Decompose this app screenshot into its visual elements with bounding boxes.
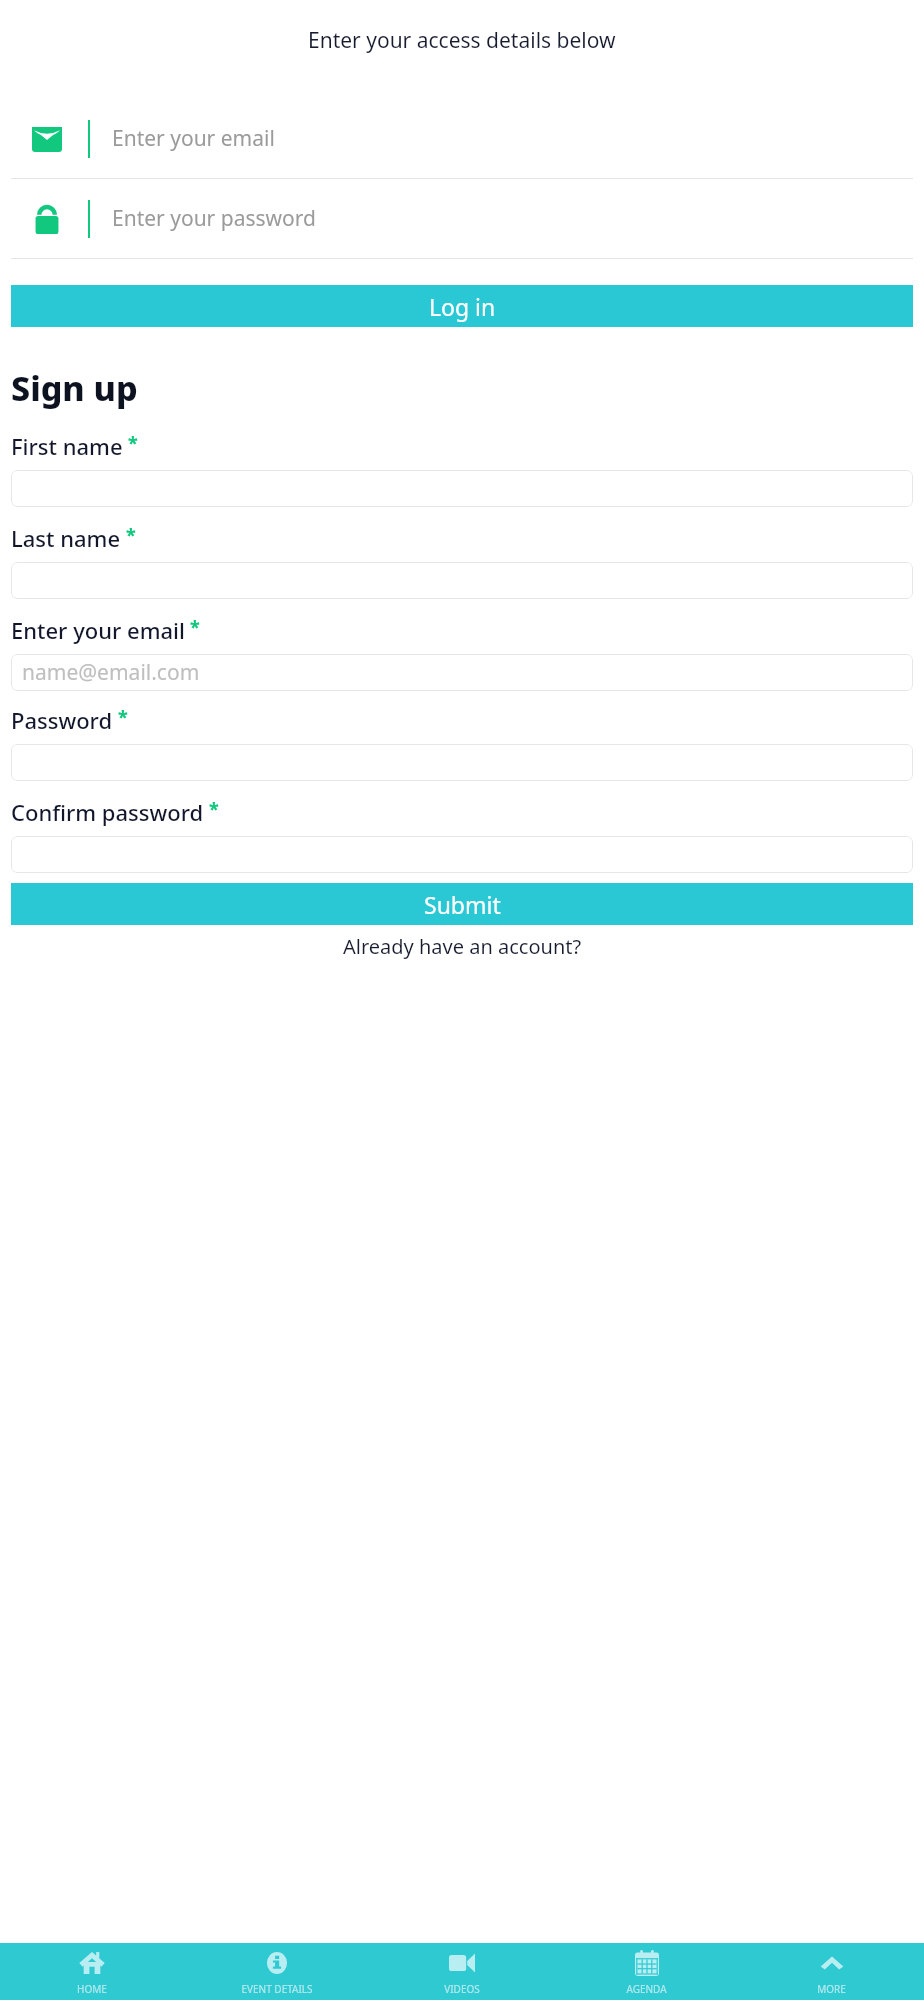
button[interactable]: Enter your email: [11, 99, 913, 178]
button[interactable]: Enter your password: [11, 179, 913, 258]
button[interactable]: [11, 836, 913, 873]
staticText: *: [190, 615, 200, 640]
staticText: *: [209, 797, 219, 822]
staticText: EVENT DETAILS: [241, 1982, 313, 1996]
button[interactable]: VIDEOS: [369, 1943, 554, 2000]
button[interactable]: Submit: [11, 883, 913, 925]
staticText: First name: [11, 431, 123, 461]
staticText: Enter your email: [112, 124, 275, 153]
button[interactable]: AGENDA: [554, 1943, 739, 2000]
staticText: Sign up: [11, 365, 138, 411]
staticText: Log in: [429, 291, 496, 322]
staticText: *: [128, 431, 138, 456]
staticText: Password: [11, 705, 113, 735]
button[interactable]: [11, 562, 913, 599]
button[interactable]: [11, 744, 913, 781]
staticText: Enter your email: [11, 615, 185, 645]
button[interactable]: [11, 470, 913, 507]
staticText: AGENDA: [626, 1982, 667, 1996]
staticText: VIDEOS: [444, 1982, 480, 1996]
button[interactable]: Already have an account?: [0, 933, 924, 960]
staticText: *: [126, 523, 136, 548]
staticText: *: [118, 705, 128, 730]
staticText: Confirm password: [11, 797, 204, 827]
staticText: MORE: [817, 1982, 846, 1996]
staticText: Enter your password: [112, 204, 316, 233]
button[interactable]: MORE: [739, 1943, 924, 2000]
staticText: Last name: [11, 523, 121, 553]
button[interactable]: EVENT DETAILS: [184, 1943, 369, 2000]
staticText: HOME: [77, 1982, 107, 1996]
staticText: Already have an account?: [343, 933, 582, 960]
button[interactable]: HOME: [0, 1943, 184, 2000]
button[interactable]: name@email.com: [11, 654, 913, 691]
staticText: Enter your access details below: [308, 26, 616, 55]
button[interactable]: Log in: [11, 285, 913, 327]
staticText: name@email.com: [22, 658, 200, 687]
staticText: Submit: [424, 889, 501, 920]
